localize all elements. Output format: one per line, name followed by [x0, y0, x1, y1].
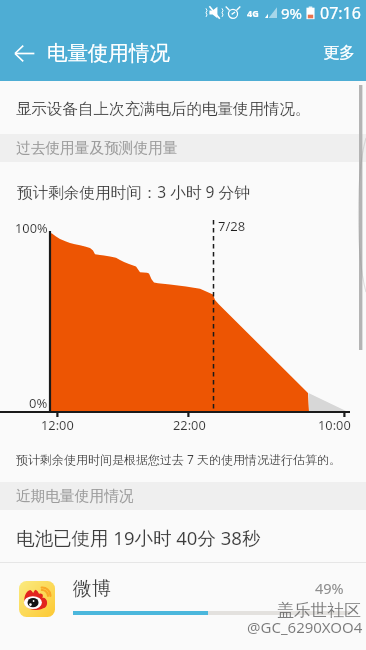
staticText: 22:00 — [173, 416, 206, 433]
button[interactable]: 更多 — [308, 31, 366, 75]
staticText: 4G — [247, 7, 259, 19]
staticText: 预计剩余使用时间：3 小时 9 分钟 — [17, 181, 250, 202]
staticText: 7/28 — [218, 217, 246, 235]
staticText: 49% — [315, 578, 344, 598]
staticText: 07:16 — [320, 2, 361, 24]
staticText: 0% — [29, 394, 48, 412]
staticText: 9% — [281, 3, 303, 23]
staticText: 预计剩余使用时间是根据您过去 7 天的使用情况进行估算的。 — [16, 451, 342, 467]
staticText: 电量使用情况 — [47, 40, 170, 66]
staticText: 盖乐世社区 — [277, 600, 361, 621]
staticText: @GC_6290XOO4 — [247, 617, 363, 637]
staticText: 近期电量使用情况 — [16, 487, 134, 506]
staticText: 电池已使用 19小时 40分 38秒 — [16, 525, 261, 550]
button[interactable]: 微博 — [0, 563, 366, 650]
staticText: 微博 — [73, 577, 111, 601]
staticText: 10:00 — [318, 416, 351, 433]
button[interactable]: Back — [0, 29, 48, 77]
staticText: 12:00 — [41, 416, 74, 433]
staticText: 更多 — [323, 43, 355, 63]
staticText: 显示设备自上次充满电后的电量使用情况。 — [16, 99, 311, 119]
staticText: 过去使用量及预测使用量 — [16, 139, 178, 158]
staticText: 100% — [15, 219, 48, 236]
